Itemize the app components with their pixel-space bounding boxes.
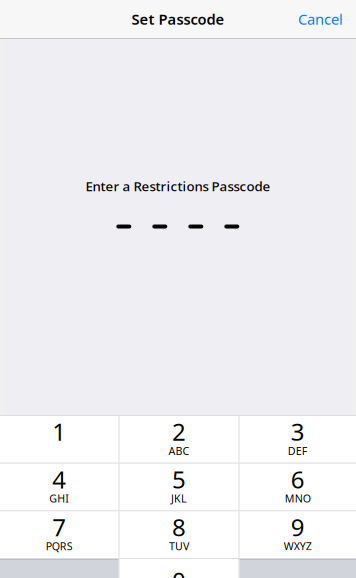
button[interactable]: Cancel	[298, 9, 356, 29]
staticText: 6	[291, 463, 305, 495]
staticText: PQRS	[46, 539, 73, 553]
staticText: 2	[172, 416, 186, 447]
staticText: 0	[172, 564, 186, 578]
staticText: Enter a Restrictions Passcode	[85, 177, 270, 195]
staticText: 8	[172, 511, 186, 543]
button[interactable]: 2	[120, 416, 239, 463]
button[interactable]: 6	[240, 464, 356, 510]
staticText: 1	[52, 416, 66, 447]
button[interactable]: 1	[0, 416, 119, 463]
staticText: WXYZ	[284, 539, 312, 553]
staticText: DEF	[288, 444, 308, 458]
staticText: 3	[291, 416, 305, 447]
button[interactable]: 5	[120, 464, 239, 510]
staticText: GHI	[49, 491, 69, 506]
button[interactable]: 8	[120, 511, 239, 558]
staticText: JKL	[171, 491, 187, 506]
staticText: 9	[291, 511, 305, 543]
staticText: 4	[52, 463, 66, 495]
staticText: MNO	[285, 491, 311, 506]
button[interactable]: 3	[240, 416, 356, 463]
staticText: ABC	[169, 444, 190, 458]
button[interactable]: 7	[0, 511, 119, 558]
staticText: Set Passcode	[131, 9, 224, 29]
staticText: TUV	[169, 539, 189, 553]
staticText: 7	[52, 511, 66, 543]
staticText: Cancel	[298, 9, 343, 29]
button[interactable]: 9	[240, 511, 356, 558]
staticText: 5	[172, 463, 186, 495]
button[interactable]: 0	[120, 559, 239, 578]
button[interactable]: 4	[0, 464, 119, 510]
